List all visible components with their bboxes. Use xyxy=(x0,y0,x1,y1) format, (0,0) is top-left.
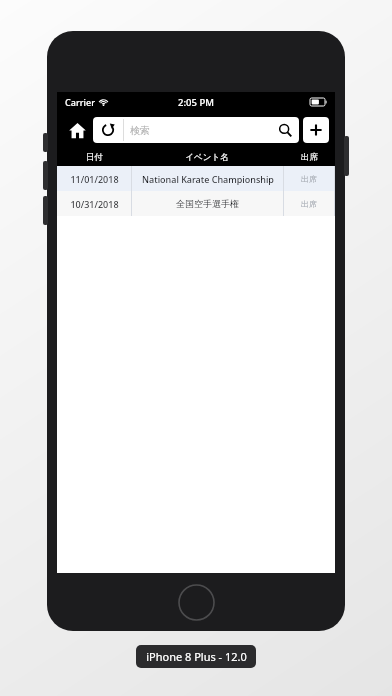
staticText: イベント名 xyxy=(185,152,229,163)
button[interactable]: Home xyxy=(63,116,91,144)
staticText: 10/31/2018 xyxy=(70,198,119,210)
button[interactable]: Refresh xyxy=(93,117,123,143)
staticText: 出席 xyxy=(301,152,318,163)
staticText: 日付 xyxy=(86,152,103,163)
staticText: 全国空手選手権 xyxy=(176,198,239,209)
staticText: 2:05 PM xyxy=(178,96,214,109)
staticText: Carrier xyxy=(65,96,95,108)
button[interactable]: 11/01/2018 xyxy=(57,166,335,191)
staticText: 検索 xyxy=(130,124,150,137)
staticText: iPhone 8 Plus - 12.0 xyxy=(146,649,247,664)
staticText: 出席 xyxy=(301,174,317,184)
staticText: 出席 xyxy=(301,199,317,209)
staticText: 11/01/2018 xyxy=(70,173,119,185)
button[interactable]: 検索 xyxy=(124,117,271,143)
button[interactable]: 10/31/2018 xyxy=(57,191,335,216)
button[interactable]: Search xyxy=(271,117,299,143)
staticText: National Karate Championship xyxy=(142,173,274,185)
button[interactable]: Add xyxy=(303,117,329,143)
